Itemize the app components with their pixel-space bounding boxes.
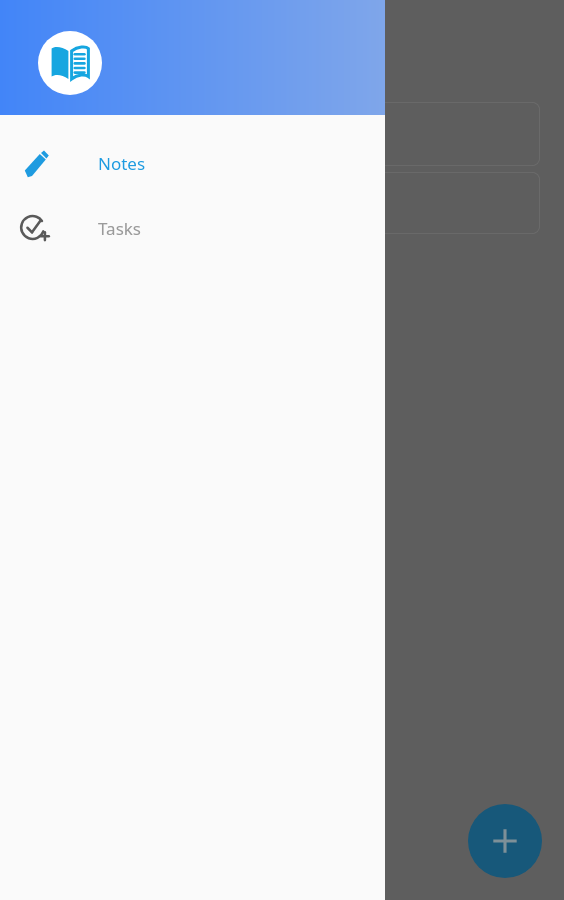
button[interactable]: Notes <box>0 131 385 196</box>
staticText: Notes <box>98 152 146 175</box>
button[interactable] <box>24 172 540 234</box>
button[interactable]: Tasks <box>0 196 385 261</box>
button[interactable] <box>24 102 540 166</box>
button[interactable]: Add <box>468 804 542 878</box>
staticText: Tasks <box>98 217 141 240</box>
button[interactable]: App logo <box>38 31 102 95</box>
